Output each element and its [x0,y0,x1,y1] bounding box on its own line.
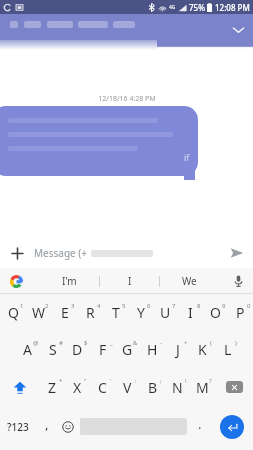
staticText: 1 [20,302,24,310]
staticText: I'm [62,274,77,288]
button[interactable]: E [52,294,78,330]
staticText: Message (+ [34,246,88,260]
staticText: @ [33,339,39,347]
button[interactable]: S [40,330,65,368]
staticText: M [196,378,209,397]
staticText: _ [110,339,113,347]
staticText: & [133,339,138,347]
staticText: , [45,415,49,433]
staticText: * [59,377,63,385]
staticText: B [148,378,158,397]
button[interactable]: X [65,368,90,406]
staticText: 3 [71,302,75,310]
button[interactable]: L [215,330,240,368]
button[interactable]: W [26,294,52,330]
staticText: H [147,340,158,359]
staticText: D [72,340,83,359]
button[interactable]: P [228,294,253,330]
button[interactable]: Backspace [215,368,253,406]
staticText: if [184,151,190,163]
staticText: : [135,377,137,385]
button[interactable]: N [165,368,190,406]
staticText: 4G [169,4,176,11]
staticText: . [198,415,202,433]
button[interactable]: K [190,330,215,368]
staticText: $ [84,339,88,347]
button[interactable]: D [65,330,90,368]
staticText: A [23,340,32,359]
staticText: - [160,339,162,347]
staticText: E [61,303,69,322]
button[interactable]: Emoji [57,406,78,447]
button[interactable]: J [165,330,190,368]
button[interactable]: . [189,406,210,447]
button[interactable]: I [100,268,159,294]
staticText: R [86,303,95,322]
staticText: 5 [122,302,126,310]
staticText: ?123 [7,420,29,434]
staticText: O [210,303,221,322]
staticText: Q [8,303,19,322]
button[interactable]: B [140,368,165,406]
staticText: S [49,340,57,359]
staticText: 0 [247,302,251,310]
button[interactable]: I [178,294,203,330]
staticText: # [59,339,63,347]
button[interactable]: Z [39,368,65,406]
button[interactable]: Collapse conversation details [223,16,253,44]
staticText: 4 [97,302,101,310]
button[interactable]: O [203,294,228,330]
staticText: 75% [189,2,205,13]
button[interactable]: Y [128,294,153,330]
staticText: 7 [172,302,176,310]
staticText: N [172,378,183,397]
button[interactable]: Send message [224,240,250,266]
button[interactable]: C [90,368,115,406]
button[interactable]: Enter [210,406,253,447]
button[interactable]: Google search [6,271,26,291]
button[interactable]: Q [0,294,26,330]
staticText: ? [209,377,212,385]
staticText: U [160,303,171,322]
staticText: F [99,340,107,359]
staticText: ; [160,377,162,385]
button[interactable]: U [153,294,178,330]
button[interactable]: , [36,406,57,447]
staticText: T [112,303,120,322]
staticText: 6 [147,302,151,310]
staticText: I [188,303,193,322]
button[interactable]: Add attachment [4,240,30,266]
staticText: J [176,340,180,359]
staticText: + [184,339,188,347]
button[interactable]: Shift, caps lock on [0,368,39,406]
staticText: V [123,378,132,397]
button[interactable]: V [115,368,140,406]
staticText: I [128,274,132,288]
button[interactable]: T [103,294,128,330]
button[interactable]: ?123 [0,406,36,447]
staticText: 8 [197,302,201,310]
staticText: 2 [45,302,49,310]
button[interactable]: I'm [39,268,99,294]
button[interactable]: H [140,330,165,368]
staticText: ( [210,339,212,347]
button[interactable]: We [160,268,219,294]
staticText: G [122,340,133,359]
staticText: K [198,340,207,359]
staticText: 12:08 PM [215,2,250,13]
staticText: 12/18/16 4:28 PM [98,94,156,104]
button[interactable]: A [14,330,40,368]
button[interactable]: R [78,294,103,330]
button[interactable]: Voice input [227,270,249,292]
staticText: 9 [222,302,226,310]
button[interactable]: if [0,106,198,176]
button[interactable]: G [115,330,140,368]
staticText: We [182,274,197,288]
staticText: ' [110,377,112,385]
staticText: L [224,340,232,359]
staticText: Z [48,378,57,397]
button[interactable]: M [190,368,215,406]
staticText: P [236,303,245,322]
button[interactable]: F [90,330,115,368]
